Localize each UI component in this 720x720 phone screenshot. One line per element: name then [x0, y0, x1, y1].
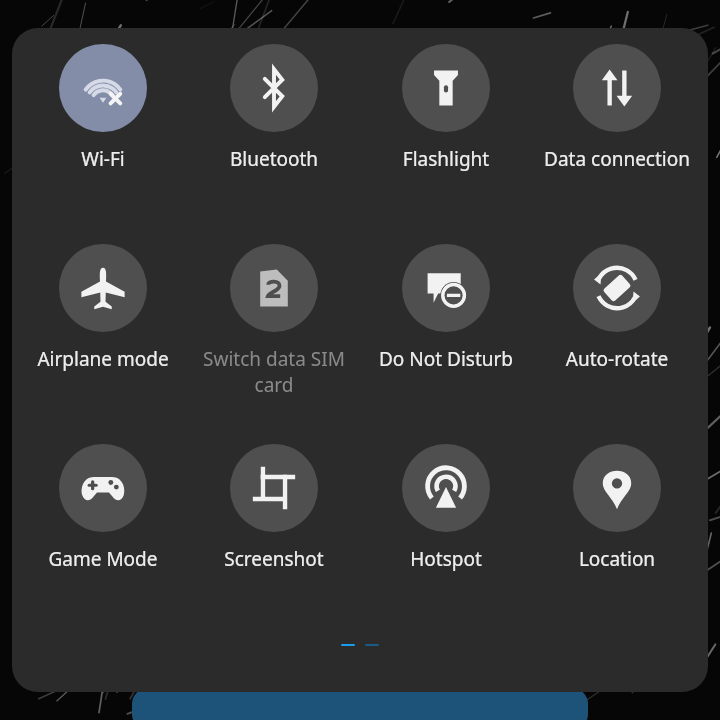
- button[interactable]: Wi-Fi: [23, 44, 183, 172]
- button[interactable]: Screenshot: [194, 444, 354, 572]
- button[interactable]: Game Mode: [23, 444, 183, 572]
- button[interactable]: Hotspot: [366, 444, 526, 572]
- staticText: Bluetooth: [198, 146, 350, 172]
- staticText: Do Not Disturb: [370, 346, 522, 372]
- staticText: Wi-Fi: [27, 146, 179, 172]
- button[interactable]: Do Not Disturb: [366, 244, 526, 372]
- staticText: Data connection: [541, 146, 693, 172]
- staticText: Hotspot: [370, 546, 522, 572]
- button[interactable]: Switch data SIM card: [194, 244, 354, 398]
- staticText: Game Mode: [27, 546, 179, 572]
- button[interactable]: Auto-rotate: [537, 244, 697, 372]
- button[interactable]: Airplane mode: [23, 244, 183, 372]
- staticText: Auto-rotate: [541, 346, 693, 372]
- staticText: Screenshot: [198, 546, 350, 572]
- button[interactable]: Flashlight: [366, 44, 526, 172]
- staticText: Flashlight: [370, 146, 522, 172]
- button[interactable]: Bluetooth: [194, 44, 354, 172]
- staticText: Airplane mode: [27, 346, 179, 372]
- button[interactable]: Location: [537, 444, 697, 572]
- staticText: Switch data SIM card: [198, 346, 350, 398]
- button[interactable]: Data connection: [537, 44, 697, 172]
- staticText: Location: [541, 546, 693, 572]
